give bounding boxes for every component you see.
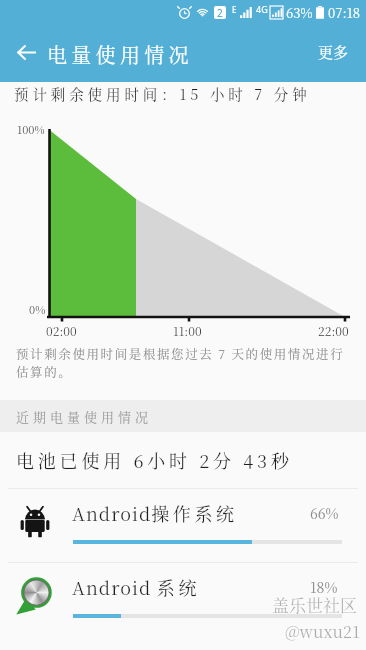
button[interactable]: Android 系统 <box>0 562 366 636</box>
button[interactable]: Android操作系统 <box>0 488 366 562</box>
staticText: 07:18 <box>328 3 361 22</box>
staticText: 更多 <box>318 41 349 63</box>
staticText: 电池已使用 6小时 2分 43秒 <box>16 447 293 473</box>
staticText: 11:00 <box>173 322 202 339</box>
staticText: 100% <box>17 121 45 137</box>
staticText: 预计剩余使用时间是根据您过去 7 天的使用情况进行估算的。 <box>16 345 352 381</box>
staticText: @wuxu21 <box>285 620 361 643</box>
staticText: 预计剩余使用时间：15 小时 7 分钟 <box>14 83 311 104</box>
staticText: Android操作系统 <box>72 500 238 526</box>
staticText: 63% <box>286 3 313 22</box>
staticText: 2 <box>217 6 223 19</box>
button[interactable]: 电池已使用 6小时 2分 43秒 <box>0 432 366 488</box>
staticText: 近期电量使用情况 <box>16 407 153 426</box>
staticText: 盖乐世社区 <box>272 592 357 616</box>
staticText: E <box>232 4 237 15</box>
staticText: 0% <box>29 301 46 317</box>
staticText: 22:00 <box>318 322 349 339</box>
button[interactable]: Back <box>6 30 46 74</box>
staticText: 02:00 <box>46 322 77 339</box>
staticText: 66% <box>310 503 339 523</box>
staticText: Android 系统 <box>72 574 201 600</box>
staticText: 电量使用情况 <box>47 40 193 69</box>
staticText: 18% <box>310 577 338 597</box>
button[interactable]: 更多 <box>308 30 358 74</box>
staticText: 4G <box>256 3 268 15</box>
